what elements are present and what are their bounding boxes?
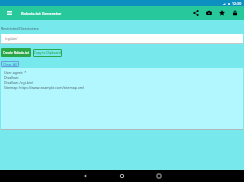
button[interactable]: Open navigation menu — [3, 7, 15, 19]
staticText: Copy to Clipboard — [34, 51, 61, 55]
staticText: Restricted Directories: — [1, 26, 40, 31]
button[interactable]: Create Robots.txt — [1, 48, 31, 57]
button[interactable]: Privacy policy — [229, 7, 241, 19]
staticText: 12:30 — [232, 1, 242, 6]
button[interactable]: Recent apps — [153, 170, 165, 182]
button[interactable]: Copy to Clipboard — [33, 49, 62, 57]
staticText: Create Robots.txt — [3, 51, 29, 55]
button[interactable]: Home — [116, 170, 128, 182]
staticText: Disallow: — [4, 75, 19, 80]
staticText: /cgi-bin/ — [5, 37, 18, 41]
staticText: Sitemap: https://www.example.com/sitemap… — [4, 85, 84, 90]
button[interactable]: Take screenshot — [203, 7, 215, 19]
staticText: Robots.txt Generator — [21, 11, 62, 16]
button[interactable]: Share — [190, 7, 202, 19]
button[interactable]: Rate app — [216, 7, 228, 19]
button[interactable]: Clear All — [1, 61, 19, 67]
staticText: Disallow: /cgi-bin/ — [4, 80, 34, 85]
button[interactable]: /cgi-bin/ — [1, 34, 243, 44]
button[interactable]: User-agent: * — [1, 68, 243, 130]
staticText: User-agent: * — [4, 70, 27, 75]
button[interactable]: Back — [79, 170, 91, 182]
staticText: Clear All — [3, 62, 17, 67]
